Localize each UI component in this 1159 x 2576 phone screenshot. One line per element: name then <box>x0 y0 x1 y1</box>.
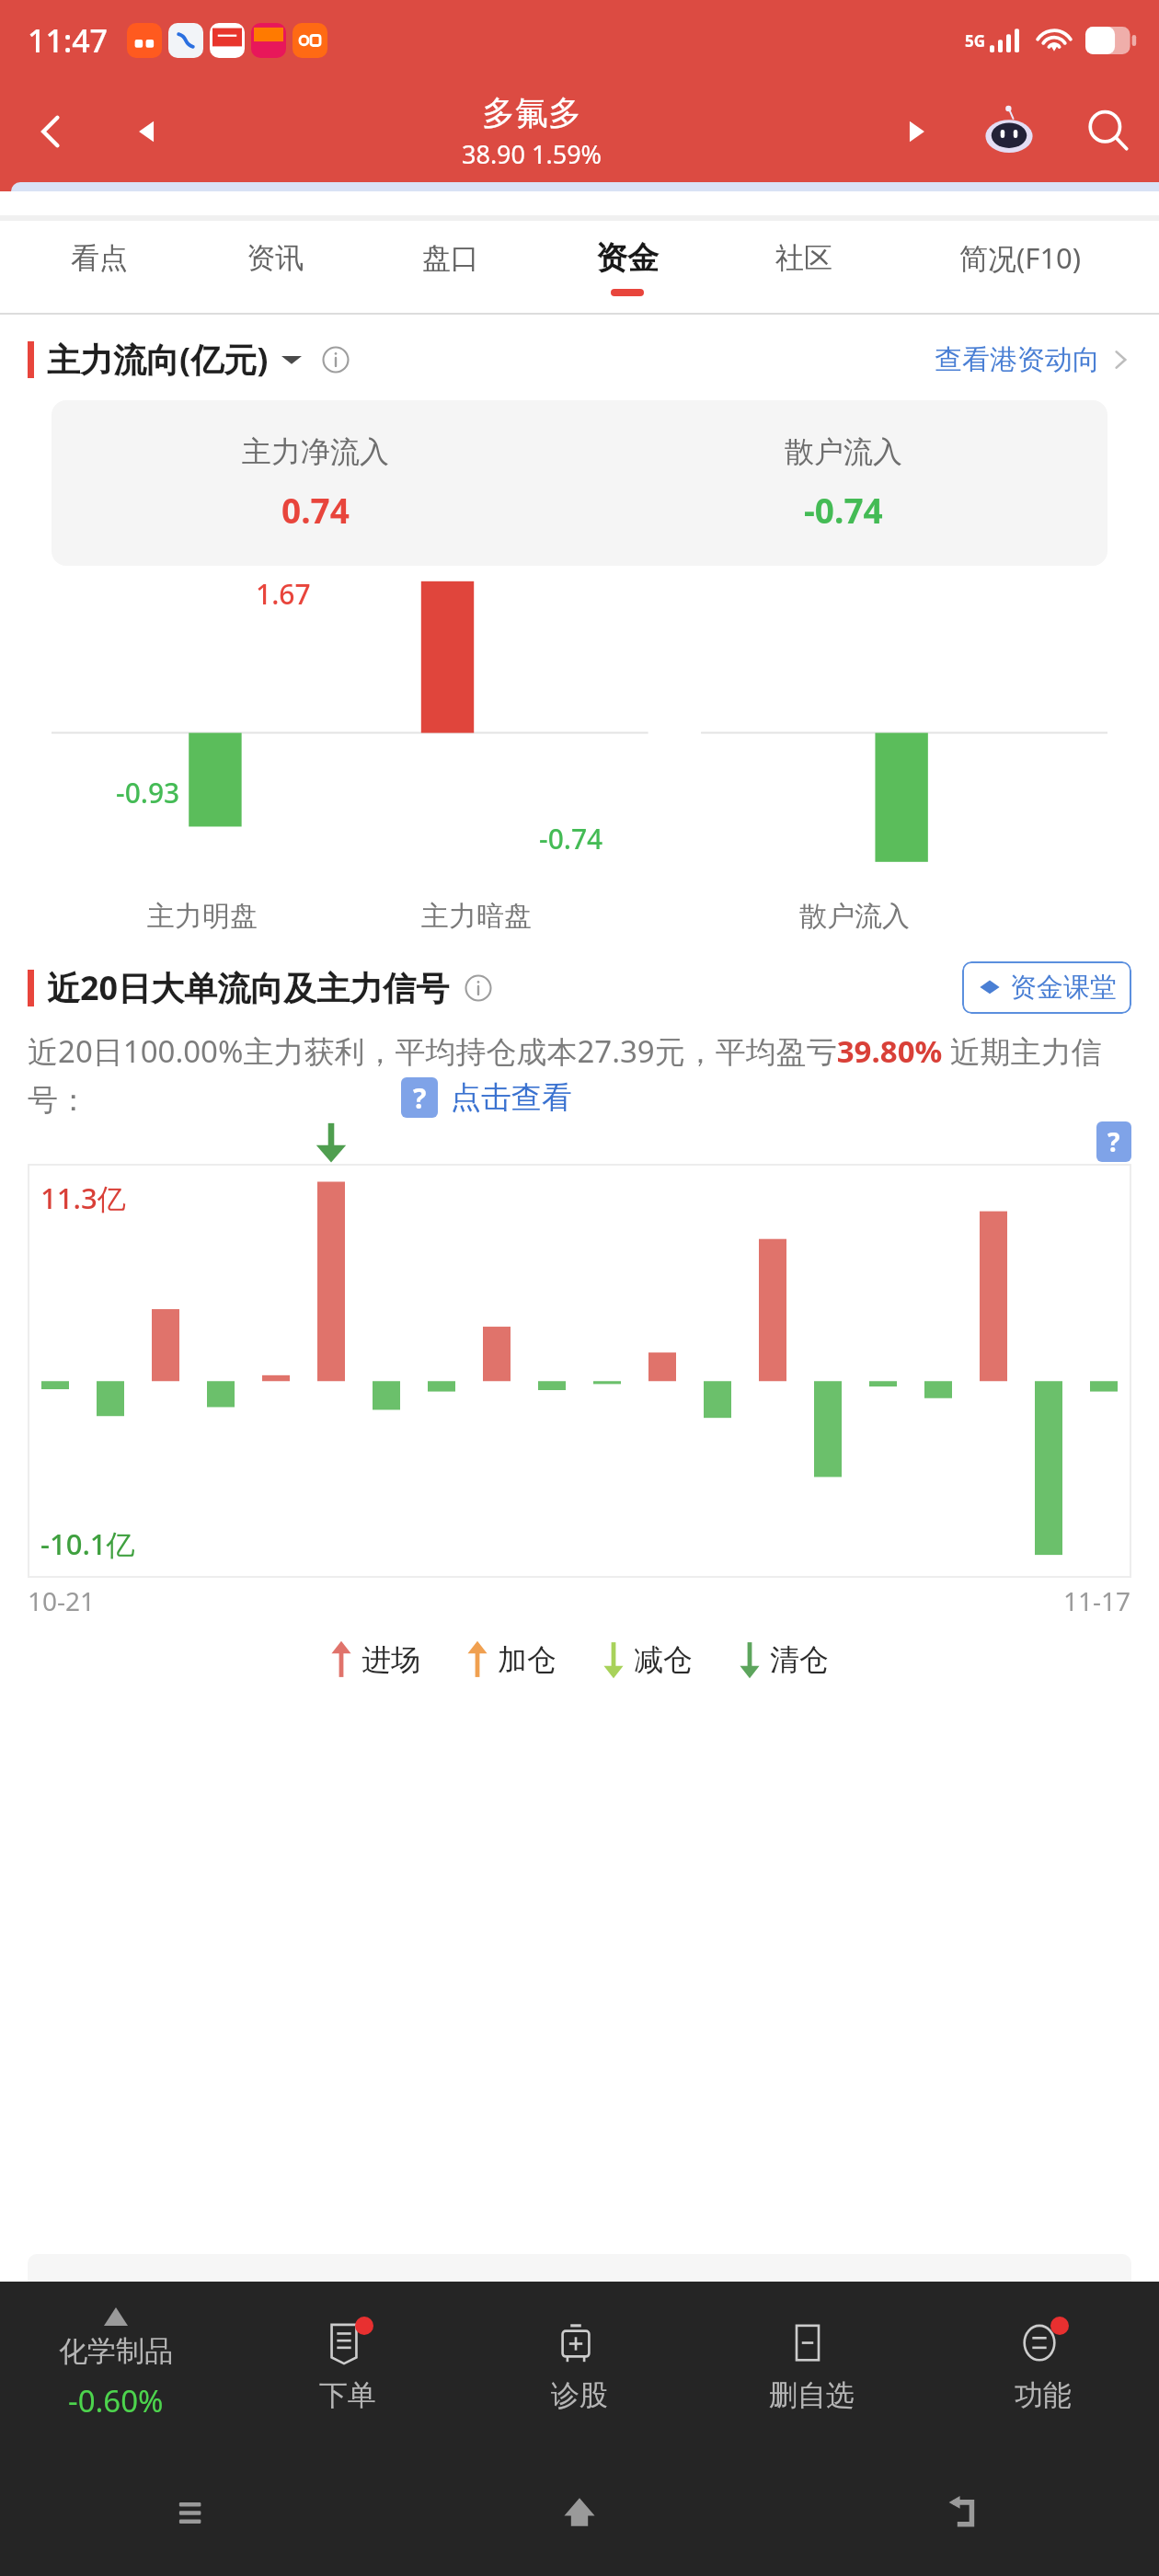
staticText: 进场 <box>361 1641 420 1678</box>
button[interactable]: Info <box>465 974 492 1002</box>
staticText: -0.60% <box>68 2380 164 2421</box>
staticText: 多氟多 <box>482 92 581 133</box>
staticText: 下单 <box>319 2377 376 2413</box>
staticText: 点击查看 <box>451 1078 572 1117</box>
staticText: 散户流入 <box>785 433 902 470</box>
button[interactable]: Chart help <box>1096 1121 1131 1162</box>
button[interactable]: 社区 <box>716 221 892 313</box>
staticText: 社区 <box>775 240 832 276</box>
staticText: 资讯 <box>247 240 304 276</box>
staticText: 主力明盘 <box>147 899 258 934</box>
button[interactable]: 资金 <box>539 221 716 313</box>
button[interactable]: 看点 <box>11 221 187 313</box>
button[interactable]: 主力流向(亿元) <box>28 337 302 382</box>
staticText: 资金课堂 <box>1010 971 1117 1005</box>
button[interactable]: 诊股 <box>464 2282 695 2447</box>
staticText: 11-17 <box>1063 1583 1131 1618</box>
staticText: 10-21 <box>28 1583 96 1618</box>
button[interactable]: 点击查看 <box>451 1078 572 1117</box>
staticText: -10.1亿 <box>40 1524 135 1563</box>
staticText: 近20日大单流向及主力信号 <box>47 965 450 1010</box>
staticText: 主力流向(亿元) <box>47 337 269 382</box>
button[interactable]: Back <box>0 81 103 182</box>
staticText: 化学制品 <box>59 2333 173 2369</box>
button[interactable]: Next stock <box>872 81 960 182</box>
staticText: 功能 <box>1015 2377 1072 2413</box>
staticText: 5G <box>965 30 986 52</box>
staticText: 资金 <box>596 238 659 278</box>
staticText: 11.3亿 <box>40 1179 126 1217</box>
staticText: 简况(F10) <box>959 238 1082 277</box>
staticText: ? <box>413 1079 427 1117</box>
staticText: 主力暗盘 <box>421 899 532 934</box>
button[interactable]: 多氟多 <box>191 81 872 182</box>
staticText: ? <box>1107 1124 1120 1159</box>
button[interactable]: AI assistant <box>960 81 1058 182</box>
button[interactable]: 资金课堂 <box>962 961 1131 1014</box>
button[interactable]: Previous stock <box>103 81 191 182</box>
staticText: 近20日100.00%主力获利，平均持仓成本27.39元，平均盈亏39.80% … <box>28 1030 1131 1120</box>
button[interactable]: Help <box>401 1077 438 1118</box>
button[interactable]: 下单 <box>232 2282 464 2447</box>
staticText: -0.93 <box>116 774 180 811</box>
staticText: 主力净流入 <box>242 433 389 470</box>
staticText: 1.67 <box>256 575 311 613</box>
staticText: 盘口 <box>422 240 479 276</box>
button[interactable]: 减仓 <box>602 1640 693 1679</box>
button[interactable]: 盘口 <box>362 221 539 313</box>
button[interactable]: Back <box>773 2447 1159 2576</box>
staticText: 减仓 <box>634 1641 693 1678</box>
staticText: 0.74 <box>281 487 350 533</box>
button[interactable]: 清仓 <box>739 1640 829 1679</box>
staticText: 看点 <box>71 240 128 276</box>
button[interactable]: 功能 <box>927 2282 1159 2447</box>
staticText: 加仓 <box>498 1641 557 1678</box>
button[interactable]: Info <box>322 346 350 374</box>
button[interactable]: 化学制品 <box>0 2282 232 2447</box>
button[interactable]: 简况(F10) <box>892 221 1148 313</box>
staticText: 38.90 1.59% <box>462 137 602 171</box>
staticText: 清仓 <box>770 1641 829 1678</box>
button[interactable]: 资讯 <box>187 221 362 313</box>
staticText: 11:47 <box>28 19 109 62</box>
staticText: 诊股 <box>551 2377 608 2413</box>
button[interactable]: Search <box>1058 81 1159 182</box>
button[interactable]: 进场 <box>330 1640 420 1679</box>
staticText: 删自选 <box>769 2377 855 2413</box>
staticText: 散户流入 <box>799 899 910 934</box>
staticText: -0.74 <box>539 820 603 857</box>
button[interactable]: Home <box>386 2447 773 2576</box>
staticText: -0.74 <box>804 487 883 533</box>
button[interactable]: 删自选 <box>695 2282 927 2447</box>
button[interactable]: 加仓 <box>466 1640 557 1679</box>
button[interactable]: Menu <box>0 2447 386 2576</box>
staticText: 查看港资动向 <box>935 342 1100 377</box>
button[interactable]: 查看港资动向 <box>935 342 1131 377</box>
